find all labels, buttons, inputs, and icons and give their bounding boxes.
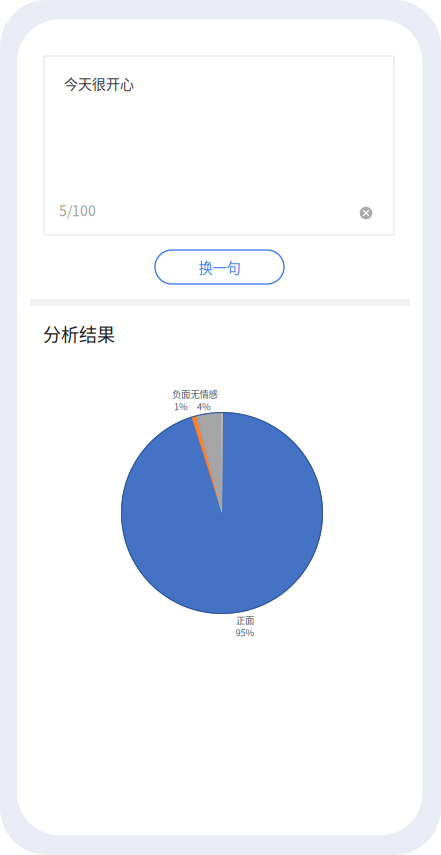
staticText: 分析结果 — [43, 320, 115, 347]
staticText: 4% — [197, 399, 211, 413]
staticText: 换一句 — [198, 257, 240, 277]
staticText: 正面 — [236, 613, 254, 626]
staticText: 今天很开心 — [64, 73, 134, 93]
staticText: 95% — [235, 625, 254, 639]
staticText: 无情感 — [190, 387, 217, 400]
staticText: 1% — [174, 399, 188, 413]
button[interactable]: Clear text — [353, 200, 379, 226]
button[interactable]: 换一句 — [155, 250, 284, 284]
staticText: 负面 — [172, 387, 190, 400]
staticText: 5/100 — [59, 200, 96, 220]
